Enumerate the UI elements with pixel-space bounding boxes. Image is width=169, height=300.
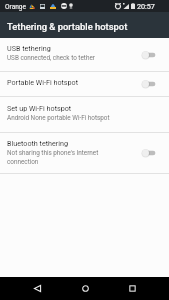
button[interactable]: Toggle	[142, 79, 156, 89]
button[interactable]: Portable Wi-Fi hotspot	[0, 72, 169, 96]
button[interactable]: USB tethering	[0, 38, 169, 71]
staticText: Tethering & portable hotspot	[7, 21, 128, 32]
staticText: Not sharing this phone's Internet connec…	[7, 149, 118, 166]
staticText: Android None portable Wi-Fi hotspot	[7, 114, 110, 121]
staticText: Orange	[5, 3, 27, 11]
staticText: Set up Wi-Fi hotspot	[7, 104, 72, 112]
button[interactable]: Home	[70, 277, 100, 300]
staticText: USB tethering	[7, 44, 51, 52]
staticText: USB connected, check to tether	[7, 54, 95, 61]
button[interactable]: Bluetooth tethering	[0, 133, 169, 173]
button[interactable]: Set up Wi-Fi hotspot	[0, 97, 169, 132]
button[interactable]: Recent apps	[117, 277, 147, 300]
staticText: Bluetooth tethering	[7, 139, 69, 147]
button[interactable]: Toggle	[142, 148, 156, 158]
button[interactable]: Toggle	[142, 50, 156, 60]
button[interactable]: Back	[22, 277, 52, 300]
staticText: Portable Wi-Fi hotspot	[7, 78, 79, 86]
staticText: 20:57	[137, 2, 155, 10]
